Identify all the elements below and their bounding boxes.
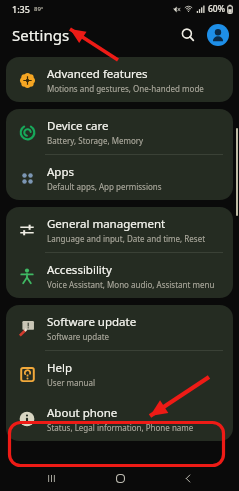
staticText: General management <box>47 216 166 232</box>
button[interactable]: About phone <box>6 396 233 441</box>
staticText: Apps <box>47 164 75 180</box>
staticText: User manual <box>47 377 95 388</box>
staticText: Accessibility <box>47 262 112 278</box>
button[interactable]: Device care <box>6 109 233 154</box>
button[interactable]: Back <box>170 465 206 491</box>
button[interactable]: Home <box>102 465 138 491</box>
button[interactable]: Software update <box>6 305 233 350</box>
staticText: Status, Legal information, Phone name <box>47 422 194 433</box>
button[interactable]: Help <box>6 351 233 396</box>
staticText: Device care <box>47 118 109 134</box>
button[interactable]: Accessibility <box>6 253 233 298</box>
staticText: 1:35 <box>12 3 30 15</box>
button[interactable]: Search <box>175 22 201 48</box>
staticText: Help <box>47 360 73 376</box>
button[interactable]: General management <box>6 207 233 252</box>
staticText: 60% <box>208 3 225 15</box>
staticText: 89° <box>34 5 44 13</box>
button[interactable]: Recents <box>33 465 69 491</box>
staticText: Advanced features <box>47 66 148 82</box>
staticText: Motions and gestures, One-handed mode <box>47 83 204 94</box>
staticText: Software update <box>47 314 137 330</box>
button[interactable]: Advanced features <box>6 57 233 102</box>
button[interactable]: Account <box>207 24 229 46</box>
staticText: Settings <box>12 25 70 45</box>
staticText: Default apps, App permissions <box>47 181 162 192</box>
staticText: About phone <box>47 405 118 421</box>
button[interactable]: Apps <box>6 155 233 200</box>
staticText: Battery, Storage, Memory <box>47 135 144 146</box>
staticText: Language and input, Date and time, Reset <box>47 233 206 244</box>
staticText: Voice Assistant, Mono audio, Assistant m… <box>47 279 215 290</box>
staticText: Software update <box>47 331 110 342</box>
